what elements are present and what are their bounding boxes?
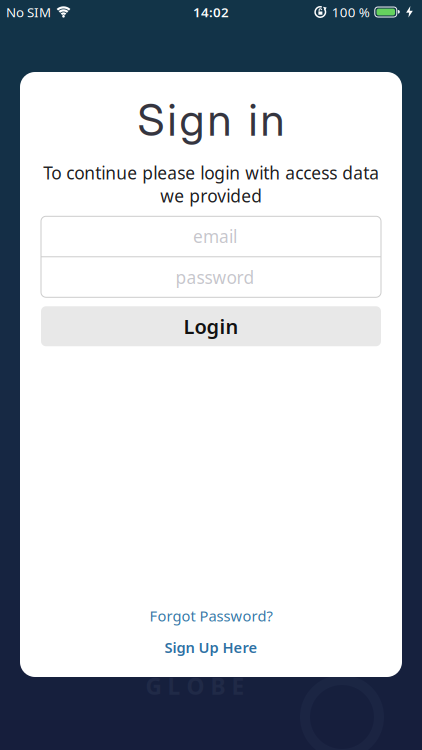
button[interactable]: email: [41, 216, 381, 256]
staticText: password: [175, 266, 254, 289]
staticText: 100 %: [332, 3, 370, 21]
button[interactable]: Forgot Password?: [149, 606, 272, 625]
staticText: Sign in: [137, 93, 284, 146]
staticText: To continue please login with access dat…: [43, 161, 379, 207]
button[interactable]: password: [41, 257, 381, 297]
staticText: Login: [183, 313, 238, 340]
button[interactable]: Sign Up Here: [164, 637, 257, 657]
staticText: Forgot Password?: [149, 606, 272, 625]
staticText: G L O B E: [145, 671, 244, 701]
staticText: 14:02: [193, 3, 229, 21]
staticText: No SIM: [6, 3, 51, 21]
staticText: email: [193, 225, 237, 248]
staticText: Sign Up Here: [164, 637, 257, 657]
button[interactable]: Login: [41, 306, 381, 346]
